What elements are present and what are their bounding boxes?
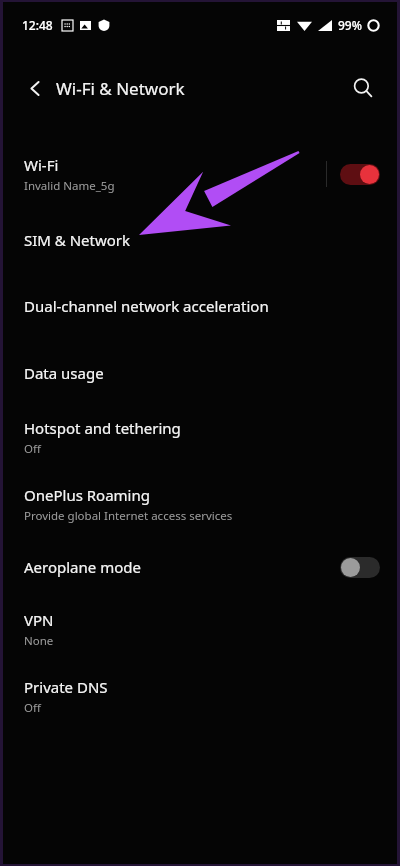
staticText: SIM & Network [24, 230, 131, 250]
button[interactable]: Search [341, 66, 385, 110]
staticText: Data usage [24, 363, 104, 383]
button[interactable]: SIM & Network [3, 224, 397, 256]
staticText: Off [24, 700, 41, 716]
button[interactable]: Aeroplane mode [3, 549, 397, 585]
staticText: Invalid Name_5g [24, 178, 115, 194]
staticText: Wi-Fi & Network [56, 77, 185, 100]
button[interactable]: Data usage [3, 357, 397, 389]
staticText: Off [24, 441, 41, 457]
button[interactable]: Hotspot and tethering [3, 414, 397, 460]
button[interactable]: Dual-channel network acceleration [3, 290, 397, 322]
staticText: Private DNS [24, 677, 108, 697]
staticText: Provide global Internet access services [24, 508, 233, 524]
staticText: Dual-channel network acceleration [24, 296, 269, 316]
staticText: Wi-Fi [24, 155, 59, 175]
staticText: OnePlus Roaming [24, 485, 150, 505]
button[interactable]: Private DNS [3, 673, 397, 719]
button[interactable]: OnePlus Roaming [3, 481, 397, 527]
button[interactable]: Back [14, 67, 56, 109]
staticText: Aeroplane mode [24, 557, 141, 577]
staticText: None [24, 633, 54, 649]
button[interactable]: Wi-Fi [3, 148, 397, 200]
staticText: 99% [338, 17, 362, 33]
staticText: VPN [24, 610, 54, 630]
staticText: 12:48 [22, 17, 53, 33]
staticText: Hotspot and tethering [24, 418, 181, 438]
button[interactable]: VPN [3, 606, 397, 652]
